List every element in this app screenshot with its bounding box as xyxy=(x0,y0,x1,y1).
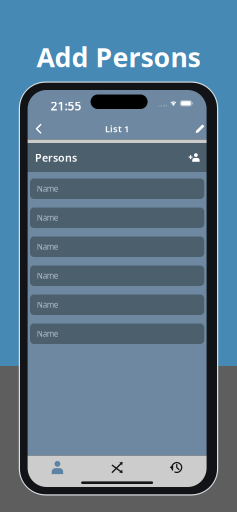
staticText: Name xyxy=(37,328,59,339)
button[interactable]: Persons xyxy=(28,455,87,479)
button[interactable]: Edit xyxy=(190,118,209,139)
staticText: 21:55 xyxy=(51,98,82,114)
staticText: Name xyxy=(37,241,59,252)
staticText: Persons xyxy=(35,150,77,165)
staticText: Name xyxy=(37,270,59,281)
button[interactable]: Back xyxy=(29,118,48,139)
staticText: List 1 xyxy=(105,123,129,135)
button[interactable]: History xyxy=(147,455,207,479)
staticText: Name xyxy=(37,183,59,194)
button[interactable]: Add person xyxy=(185,148,203,166)
staticText: Add Persons xyxy=(36,39,200,75)
button[interactable]: Shuffle xyxy=(87,455,147,479)
staticText: Name xyxy=(37,212,59,223)
staticText: Name xyxy=(37,299,59,310)
